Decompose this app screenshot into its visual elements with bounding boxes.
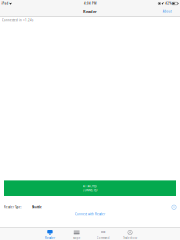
staticText: Reader [45,236,55,240]
button[interactable]: Tradeshow [117,227,143,240]
staticText: Command [97,236,110,240]
staticText: HEX [101,231,106,234]
staticText: Swipe [73,236,81,240]
staticText: 42% [165,2,171,5]
staticText: 4:04 PM [84,2,96,5]
staticText: iPad [1,2,8,5]
staticText: Tradeshow [123,236,137,240]
button[interactable]: Connect with Reader [0,211,180,217]
button[interactable]: Reader information [169,201,178,214]
staticText: Connect with Reader [75,212,105,216]
staticText: Shuttle [32,205,42,209]
button[interactable]: HEX [90,227,117,240]
button[interactable]: Swipe [63,227,90,240]
staticText: About [163,10,172,13]
button[interactable]: Reader [37,227,63,240]
staticText: Reader Type: [4,205,22,209]
button[interactable]: About [159,7,180,16]
staticText: Connected in <1.24s [2,18,33,22]
staticText: ATTACHED [83,184,97,188]
staticText: Reader [83,9,97,14]
staticText: CONNECTED [82,188,97,192]
